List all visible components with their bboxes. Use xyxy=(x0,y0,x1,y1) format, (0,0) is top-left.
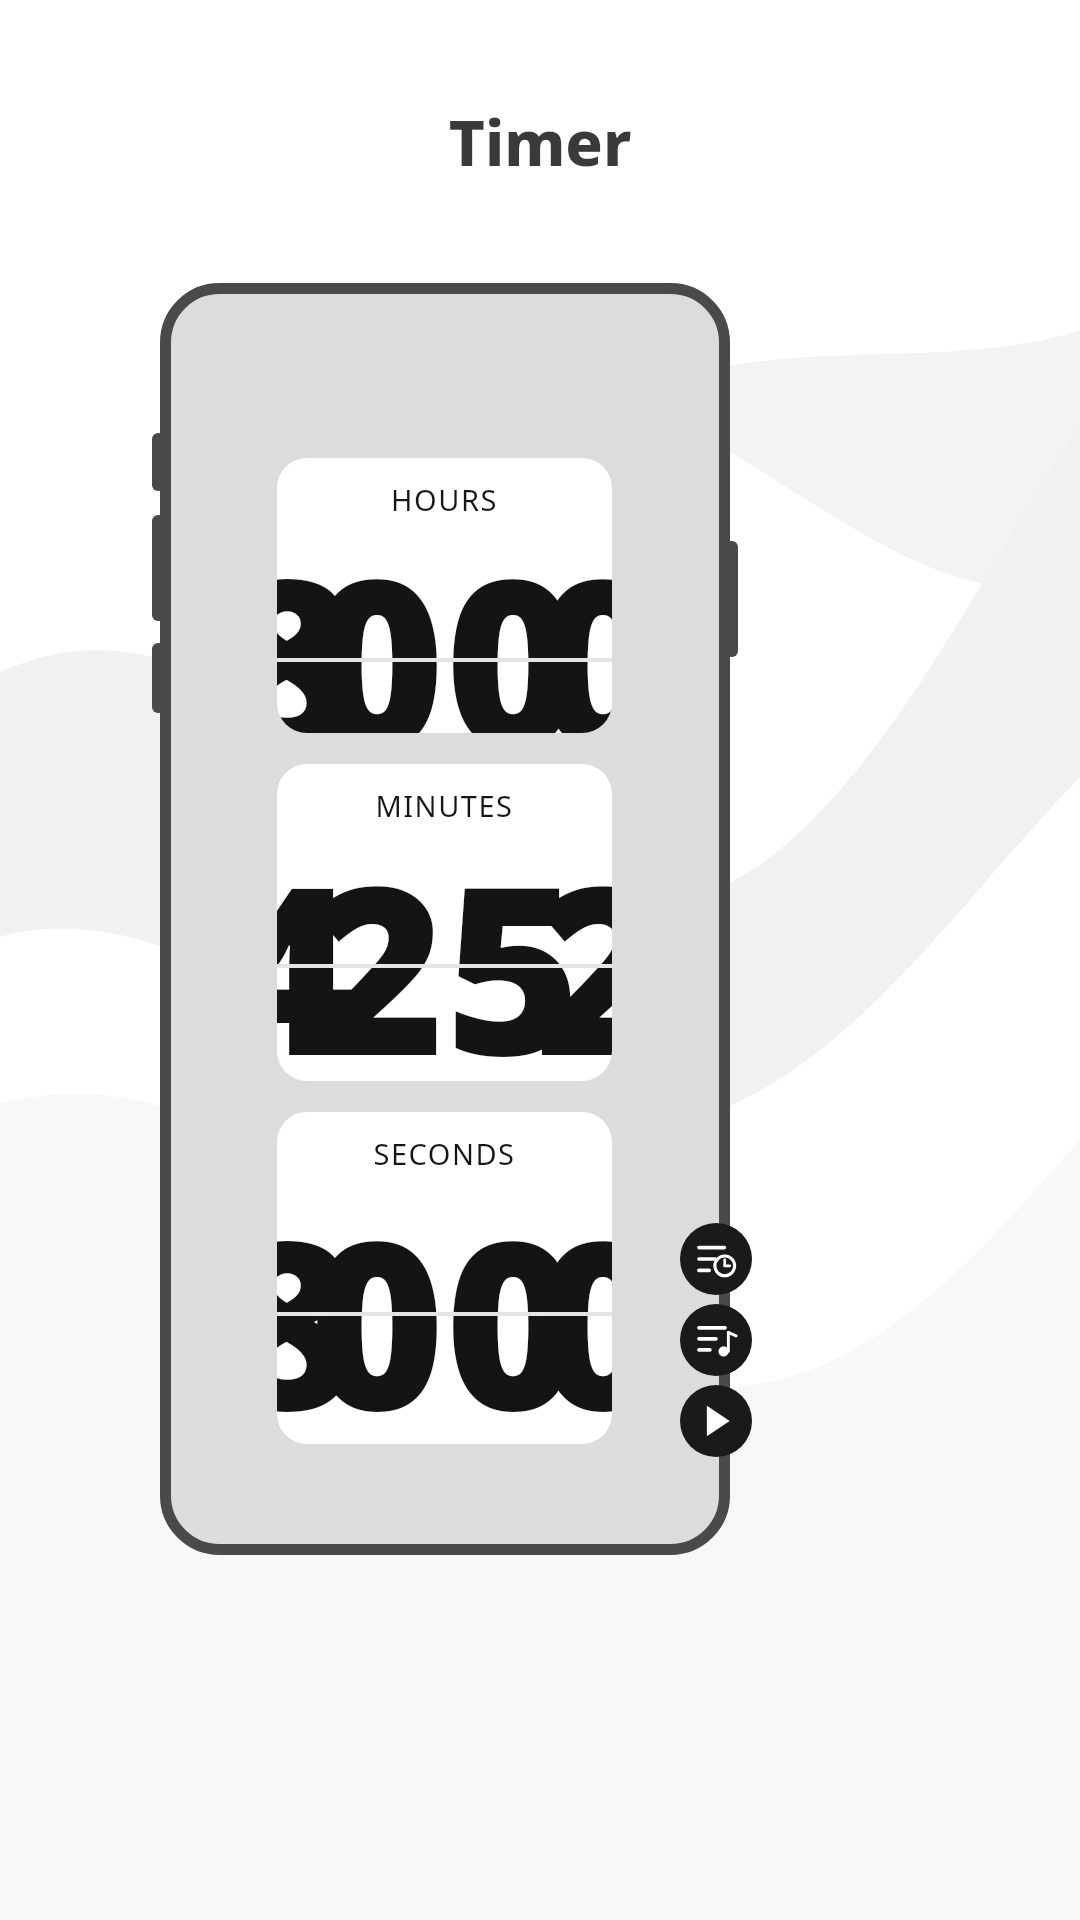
staticText: 25 xyxy=(309,807,581,1081)
staticText: MINUTES xyxy=(277,786,612,825)
staticText: 00 xyxy=(309,1162,581,1444)
staticText: 8 xyxy=(277,500,355,733)
staticText: 2 xyxy=(535,807,612,1081)
staticText: 8 xyxy=(277,1162,355,1444)
staticText: 0 xyxy=(535,1162,612,1444)
staticText: 4 xyxy=(277,807,355,1081)
staticText: SECONDS xyxy=(277,1134,612,1173)
staticText: 00 xyxy=(309,500,581,733)
button[interactable]: Presets xyxy=(680,1223,752,1295)
staticText: HOURS xyxy=(277,480,612,519)
button[interactable]: MINUTES xyxy=(277,764,612,1081)
button[interactable]: Alarm sound xyxy=(680,1304,752,1376)
button[interactable]: Start timer xyxy=(680,1385,752,1457)
button[interactable]: SECONDS xyxy=(277,1112,612,1444)
staticText: Timer xyxy=(0,100,1080,184)
staticText: 0 xyxy=(535,500,612,733)
button[interactable]: HOURS xyxy=(277,458,612,733)
